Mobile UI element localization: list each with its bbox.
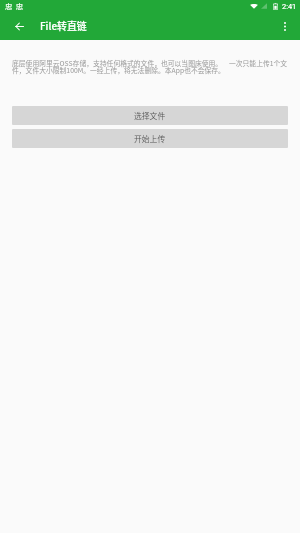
staticText: 忠 忠: [5, 0, 24, 11]
button[interactable]: Back: [6, 13, 32, 39]
staticText: 选择文件: [134, 110, 166, 121]
button[interactable]: 开始上传: [12, 129, 288, 148]
staticText: 开始上传: [134, 133, 166, 144]
button[interactable]: 选择文件: [12, 106, 288, 125]
button[interactable]: More options: [272, 13, 298, 39]
staticText: File转直链: [40, 19, 87, 33]
staticText: 底层使用阿里云OSS存储，支持任何格式的文件，也可以当图床使用。 一次只能上传1…: [12, 58, 298, 75]
staticText: 2:41: [282, 2, 297, 11]
